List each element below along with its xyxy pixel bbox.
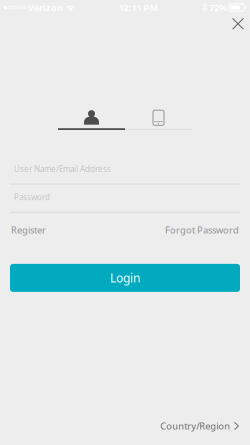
staticText: Password [14,192,50,202]
button[interactable]: Forgot Password [165,222,239,238]
staticText: User Name/Email Address [14,164,111,174]
button[interactable]: Login [10,264,240,292]
button[interactable]: Country/Region [160,416,239,436]
button[interactable]: Register [11,222,46,238]
button[interactable]: Account login [58,110,125,130]
staticText: Forgot Password [165,224,239,236]
staticText: Login [110,270,140,286]
staticText: Verizon [28,1,63,14]
staticText: Country/Region [160,420,230,432]
staticText: Register [11,224,46,236]
staticText: 12:11 PM [118,1,158,14]
staticText: 72% [209,1,227,14]
button[interactable]: Close [228,17,248,30]
button[interactable]: Phone login [125,110,192,130]
